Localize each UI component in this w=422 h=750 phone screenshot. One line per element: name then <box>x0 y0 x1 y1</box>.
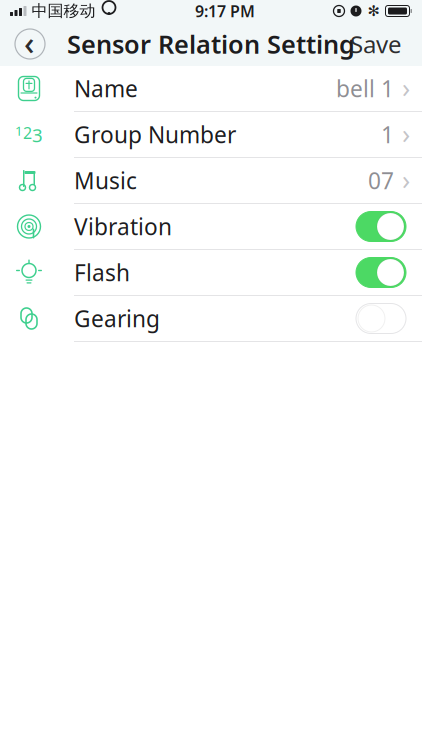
staticText: 9:17 PM <box>195 0 255 22</box>
staticText: Flash <box>74 257 130 287</box>
staticText: Group Number <box>74 119 236 149</box>
staticText: 中国移动 <box>31 1 95 21</box>
staticText: Music <box>74 165 137 195</box>
button[interactable]: 1 <box>0 112 422 157</box>
staticText: › <box>402 70 410 105</box>
staticText: 1 <box>381 119 394 149</box>
staticText: Vibration <box>74 211 172 241</box>
staticText: ‹ <box>24 21 34 64</box>
staticText: Gearing <box>74 303 160 333</box>
staticText: Name <box>74 73 138 103</box>
button[interactable]: Back <box>8 22 52 66</box>
staticText: 2 <box>23 122 32 143</box>
button[interactable]: Vibration <box>0 204 422 249</box>
staticText: › <box>402 116 410 151</box>
staticText: › <box>402 162 410 197</box>
button[interactable]: Save <box>340 22 412 66</box>
staticText: Sensor Relation Setting <box>67 27 355 61</box>
button[interactable]: Name <box>0 66 422 111</box>
staticText: bell 1 <box>336 73 394 103</box>
staticText: 1 <box>15 122 23 139</box>
staticText: ✻ <box>367 3 379 19</box>
staticText: Save <box>350 28 402 60</box>
button[interactable]: Flash <box>0 250 422 295</box>
button[interactable]: Gearing <box>0 296 422 341</box>
button[interactable]: Music <box>0 158 422 203</box>
staticText: 3 <box>32 123 43 147</box>
staticText: 07 <box>368 165 394 195</box>
